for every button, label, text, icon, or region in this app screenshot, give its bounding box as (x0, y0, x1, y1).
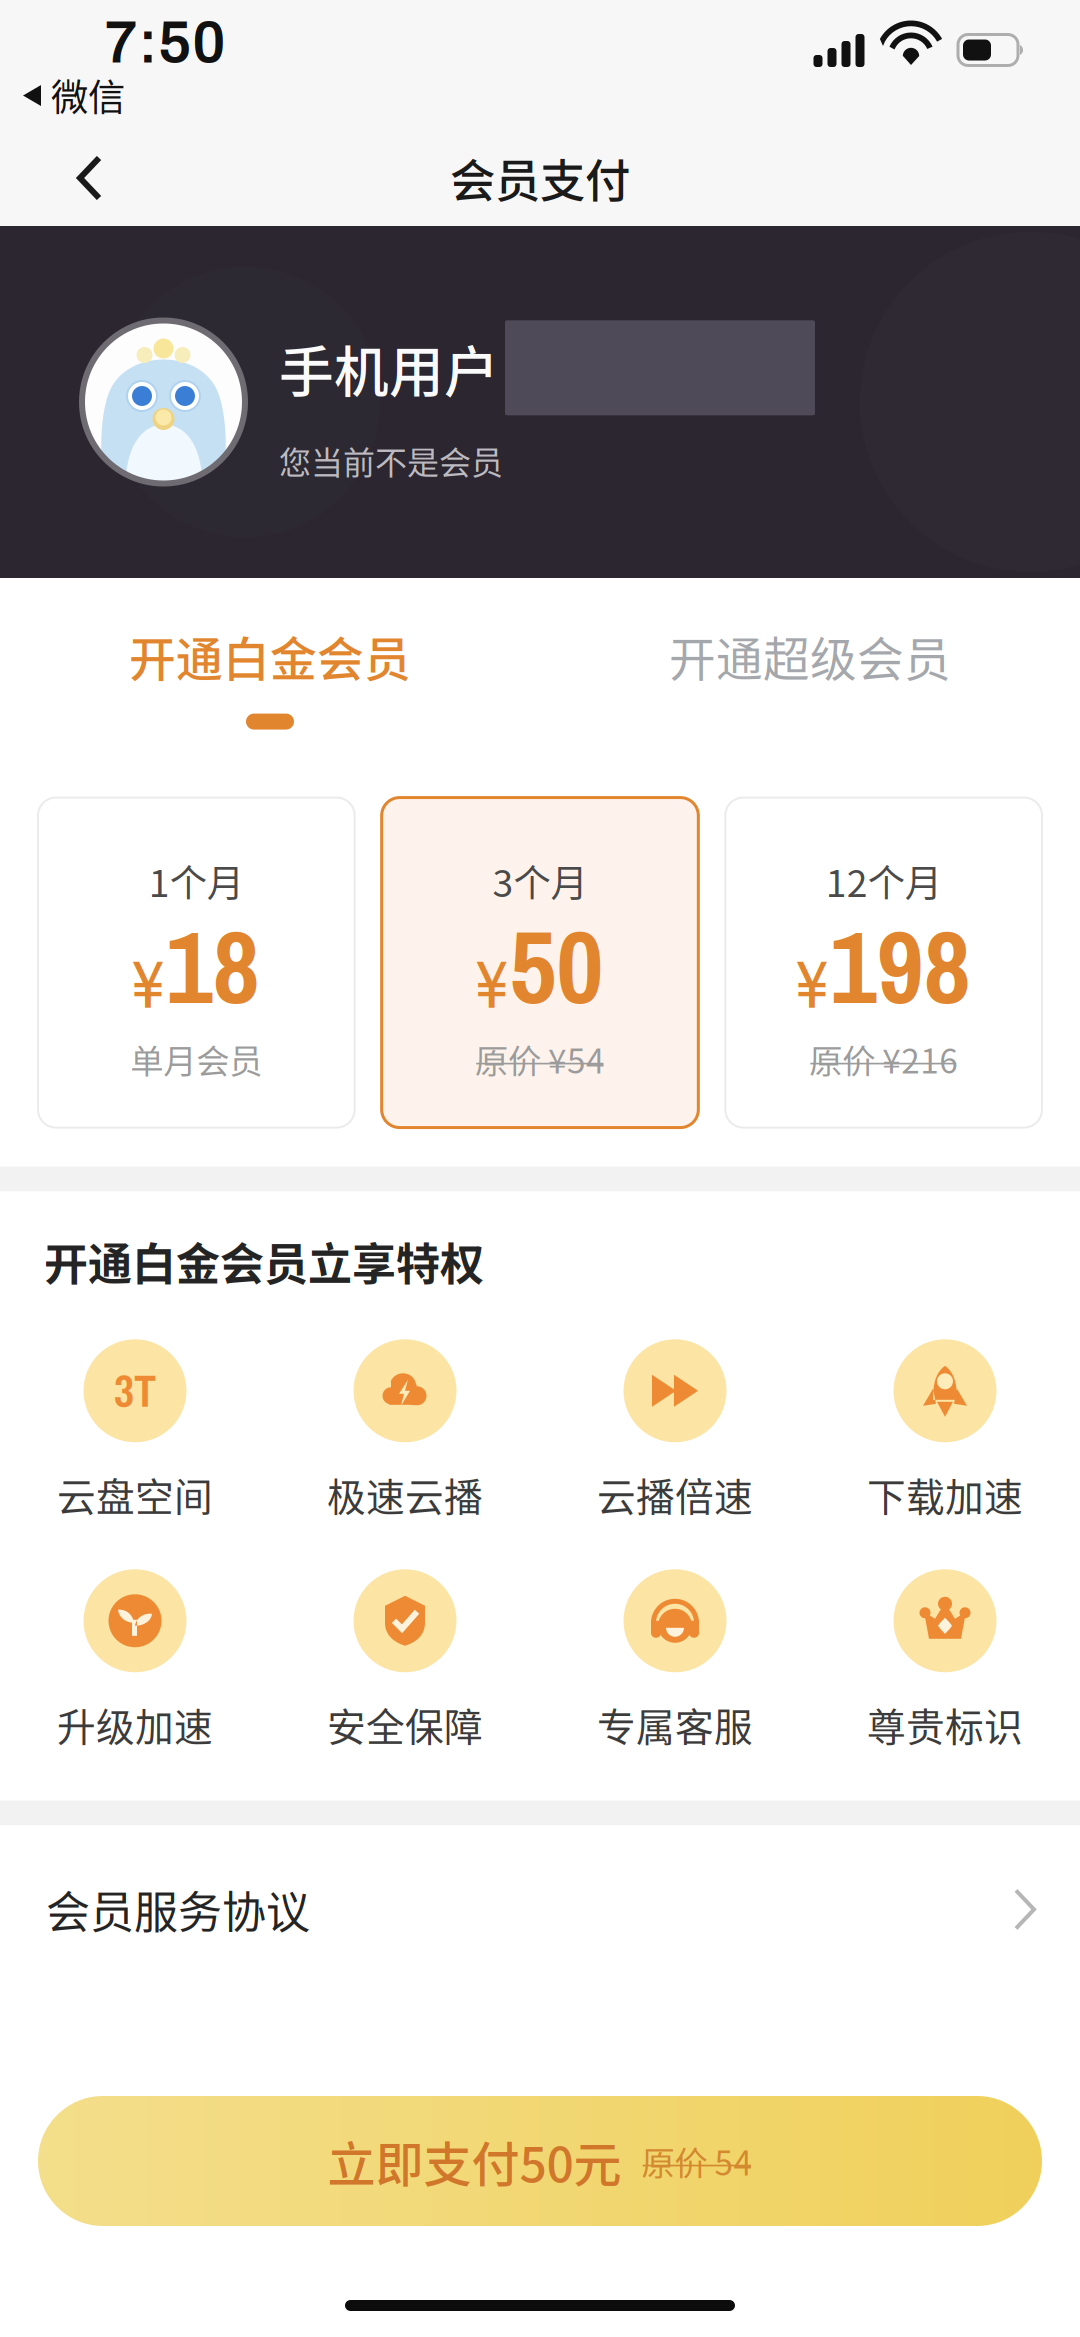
staticText: 7:50 (104, 11, 226, 75)
button[interactable]: 会员服务协议 (0, 1826, 1080, 2046)
staticText: 50 (509, 897, 603, 1035)
staticText: ¥ (797, 938, 827, 1028)
button[interactable]: 开通白金会员 (0, 578, 540, 798)
staticText: 原价 ¥54 (475, 1035, 605, 1083)
button[interactable]: 返回 (0, 131, 148, 225)
staticText: 12个月 (826, 854, 942, 908)
button[interactable]: 1个月 (38, 798, 355, 1128)
staticText: 18 (166, 897, 260, 1035)
staticText: 手机用户 (279, 328, 499, 407)
button[interactable]: 立即支付50元 (38, 2096, 1042, 2226)
button[interactable]: 3个月 (382, 798, 698, 1128)
staticText: 您当前不是会员 (279, 437, 503, 484)
staticText: 专属客服 (597, 1696, 753, 1752)
staticText: 升级加速 (57, 1696, 213, 1752)
staticText: 1个月 (149, 854, 244, 908)
button[interactable]: 12个月 (725, 798, 1042, 1128)
staticText: 开通白金会员 (129, 622, 411, 690)
staticText: 下载加速 (867, 1466, 1023, 1522)
staticText: 原价 ¥216 (809, 1035, 958, 1083)
staticText: 3T (114, 1361, 156, 1420)
staticText: 开通白金会员立享特权 (44, 1230, 484, 1293)
button[interactable]: 开通超级会员 (540, 578, 1080, 798)
staticText: 云盘空间 (57, 1466, 213, 1522)
staticText: 198 (830, 897, 971, 1035)
staticText: 立即支付50元 (327, 2126, 621, 2196)
staticText: 3个月 (492, 854, 587, 908)
staticText: 尊贵标识 (867, 1696, 1023, 1752)
staticText: 会员服务协议 (46, 1878, 310, 1941)
staticText: 微信 (51, 68, 125, 122)
staticText: 开通超级会员 (669, 622, 951, 690)
staticText: 会员支付 (450, 145, 630, 211)
staticText: 安全保障 (327, 1696, 483, 1752)
staticText: 原价 54 (641, 2137, 752, 2185)
staticText: 单月会员 (130, 1035, 262, 1083)
staticText: 极速云播 (327, 1466, 483, 1522)
staticText: ¥ (133, 938, 163, 1028)
staticText: ¥ (476, 938, 506, 1028)
staticText: 云播倍速 (597, 1466, 753, 1522)
